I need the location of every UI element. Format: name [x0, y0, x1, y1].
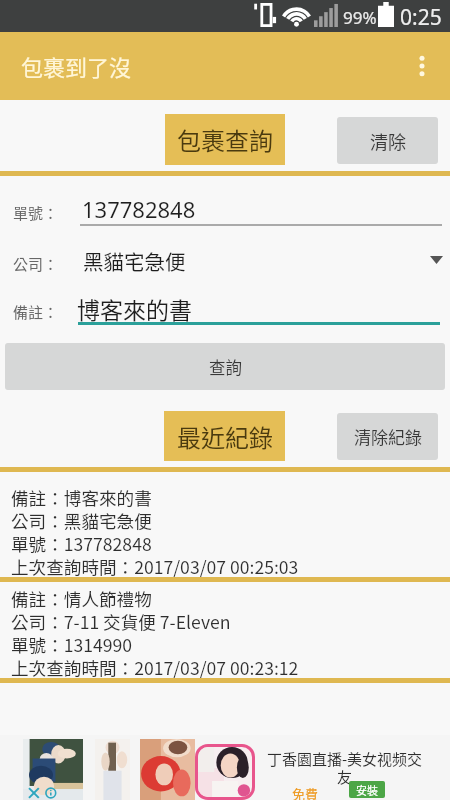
button[interactable]: 清除 — [337, 117, 438, 164]
staticText: 最近紀錄 — [177, 419, 273, 454]
staticText: 博客來的書 — [77, 292, 192, 325]
staticText: 查詢 — [209, 355, 242, 379]
staticText: 公司： — [13, 253, 59, 275]
button[interactable]: More options — [402, 46, 442, 86]
staticText: 包裹查詢 — [177, 122, 273, 157]
button[interactable]: Select company — [424, 248, 448, 272]
staticText: 備註： — [13, 301, 59, 323]
staticText: 單號： — [13, 202, 59, 224]
button[interactable]: 最近紀錄 — [164, 411, 285, 461]
staticText: 公司：黑貓宅急便 — [11, 508, 152, 531]
button[interactable]: 備註：博客來的書 — [0, 472, 450, 577]
staticText: 上次查詢時間：2017/03/07 00:25:03 — [11, 554, 299, 577]
staticText: 黑貓宅急便 — [83, 246, 186, 276]
button[interactable]: Advertisement — [0, 735, 450, 800]
button[interactable]: 查詢 — [5, 343, 445, 390]
staticText: 免費 — [292, 784, 319, 800]
staticText: 丁香園直播-美女视频交友 — [262, 748, 427, 787]
staticText: 上次查詢時間：2017/03/07 00:23:12 — [11, 655, 299, 678]
button[interactable]: 包裹查詢 — [165, 114, 285, 165]
staticText: 99% — [343, 6, 377, 29]
staticText: 0:25 — [400, 3, 442, 32]
staticText: 備註：博客來的書 — [11, 485, 152, 508]
staticText: 137782848 — [82, 194, 196, 224]
staticText: 清除紀錄 — [354, 424, 422, 449]
button[interactable]: 安裝 — [349, 781, 385, 798]
button[interactable]: 備註：情人節禮物 — [0, 582, 450, 678]
staticText: 清除 — [370, 128, 406, 154]
staticText: 單號：137782848 — [11, 531, 152, 554]
staticText: 單號：1314990 — [11, 632, 133, 655]
staticText: 備註：情人節禮物 — [11, 586, 152, 609]
staticText: 包裹到了沒 — [21, 50, 132, 82]
button[interactable]: 清除紀錄 — [337, 413, 438, 460]
staticText: 公司：7-11 交貨便 7-Eleven — [11, 609, 231, 632]
staticText: 安裝 — [356, 782, 378, 798]
